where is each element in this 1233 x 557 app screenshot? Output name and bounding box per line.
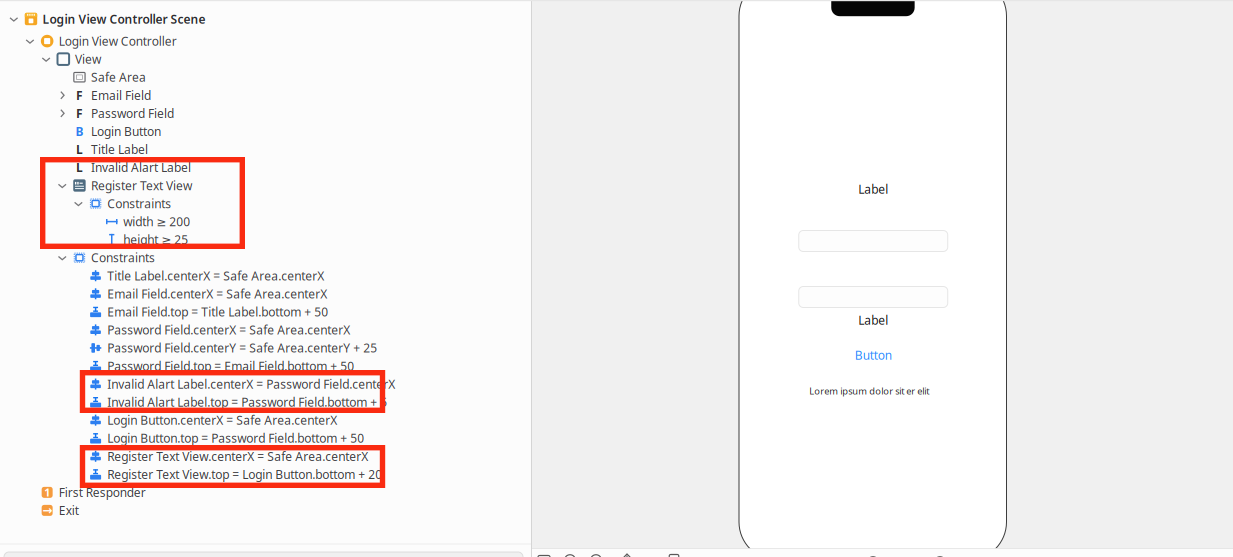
button[interactable]: Update frames xyxy=(620,553,633,557)
button[interactable]: width ≥ 200 xyxy=(0,213,531,231)
staticText: Button xyxy=(855,347,892,363)
staticText: Constraints xyxy=(91,250,155,266)
staticText: Email Field.top = Title Label.bottom + 5… xyxy=(107,304,328,320)
button[interactable]: Password Field.centerY = Safe Area.cente… xyxy=(0,339,531,357)
button[interactable]: Zoom out xyxy=(866,555,879,557)
button[interactable]: Password Field.centerX = Safe Area.cente… xyxy=(0,321,531,339)
staticText: Password Field.centerY = Safe Area.cente… xyxy=(107,340,377,356)
staticText: F xyxy=(76,87,83,103)
button[interactable]: L xyxy=(0,140,531,158)
staticText: L xyxy=(76,159,83,175)
button[interactable]: Email Field.centerX = Safe Area.centerX xyxy=(0,285,531,303)
staticText: Login Button.centerX = Safe Area.centerX xyxy=(107,412,337,428)
staticText: Login Button xyxy=(91,123,161,139)
button[interactable]: Login Button.top = Password Field.bottom… xyxy=(0,429,531,447)
staticText: Password Field xyxy=(91,105,174,121)
button[interactable]: Login View Controller Scene xyxy=(0,10,531,28)
staticText: Exit xyxy=(59,502,79,518)
button[interactable]: Zoom xyxy=(563,553,576,557)
button[interactable]: View xyxy=(0,50,531,68)
button[interactable]: Register Text View xyxy=(0,176,531,195)
staticText: Login View Controller xyxy=(59,33,177,49)
button[interactable]: B xyxy=(0,122,531,140)
staticText: 1 xyxy=(44,485,50,499)
button[interactable]: 1 xyxy=(0,483,531,501)
button[interactable]: Title Label.centerX = Safe Area.centerX xyxy=(0,267,531,285)
button[interactable]: Constraints xyxy=(0,194,531,213)
staticText: Constraints xyxy=(107,196,171,211)
staticText: Register Text View.centerX = Safe Area.c… xyxy=(107,448,368,464)
staticText: Label xyxy=(858,312,888,328)
button[interactable]: Toggle sidebar xyxy=(537,553,550,557)
button[interactable]: Constraints xyxy=(0,249,531,267)
button[interactable]: Password Field.top = Email Field.bottom … xyxy=(0,357,531,375)
staticText: Invalid Alart Label.centerX = Password F… xyxy=(107,376,395,392)
staticText: Label xyxy=(858,181,888,197)
button[interactable]: Register Text View.top = Login Button.bo… xyxy=(0,465,531,483)
button[interactable]: F xyxy=(0,86,531,104)
staticText: Title Label xyxy=(91,141,148,157)
staticText: Email Field xyxy=(91,87,151,103)
button[interactable]: F xyxy=(0,104,531,122)
button[interactable]: Pin xyxy=(589,553,602,557)
staticText: Safe Area xyxy=(91,69,146,85)
staticText: Invalid Alart Label.top = Password Field… xyxy=(107,394,387,410)
staticText: Login View Controller Scene xyxy=(43,11,206,27)
button[interactable]: height ≥ 25 xyxy=(0,231,531,249)
staticText: Invalid Alart Label xyxy=(91,159,191,175)
button[interactable]: Email Field.top = Title Label.bottom + 5… xyxy=(0,303,531,321)
staticText: F xyxy=(76,105,83,121)
staticText: Register Text View.top = Login Button.bo… xyxy=(107,466,382,482)
button[interactable]: Login Button.centerX = Safe Area.centerX xyxy=(0,411,531,429)
button[interactable]: Invalid Alart Label.top = Password Field… xyxy=(0,393,531,411)
button[interactable]: Register Text View.centerX = Safe Area.c… xyxy=(0,447,531,465)
staticText: Login Button.top = Password Field.bottom… xyxy=(107,430,364,446)
staticText: → xyxy=(42,504,52,517)
staticText: Lorem ipsum dolor sit er elit xyxy=(809,385,929,397)
button[interactable]: Safe Area xyxy=(0,68,531,86)
staticText: Email Field.centerX = Safe Area.centerX xyxy=(107,286,327,302)
staticText: L xyxy=(76,141,83,157)
staticText: height ≥ 25 xyxy=(123,232,188,248)
button[interactable]: Zoom in xyxy=(933,555,946,557)
staticText: width ≥ 200 xyxy=(123,214,190,229)
button[interactable]: Filter xyxy=(4,552,523,557)
staticText: Password Field.top = Email Field.bottom … xyxy=(107,358,354,374)
staticText: View xyxy=(75,51,101,67)
staticText: B xyxy=(75,123,83,139)
staticText: Register Text View xyxy=(91,177,192,193)
staticText: Password Field.centerX = Safe Area.cente… xyxy=(107,322,350,338)
staticText: First Responder xyxy=(59,484,146,500)
button[interactable]: Login View Controller xyxy=(0,32,531,50)
button[interactable]: Invalid Alart Label.centerX = Password F… xyxy=(0,375,531,393)
button[interactable]: → xyxy=(0,501,531,519)
staticText: Title Label.centerX = Safe Area.centerX xyxy=(107,268,324,284)
button[interactable]: L xyxy=(0,158,531,176)
button[interactable]: Embed in xyxy=(667,553,680,557)
